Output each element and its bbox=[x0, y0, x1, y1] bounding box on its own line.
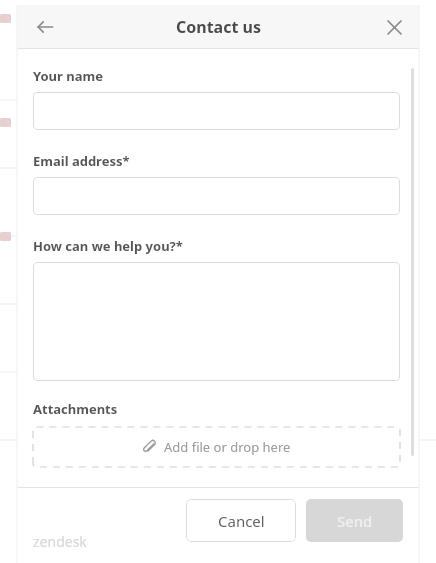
staticText: Add file or drop here bbox=[164, 438, 291, 456]
button[interactable]: Close bbox=[377, 10, 411, 44]
button[interactable]: Add file or drop here bbox=[33, 427, 400, 467]
button[interactable]: Send bbox=[306, 499, 403, 542]
staticText: Send bbox=[337, 511, 373, 531]
staticText: Contact us bbox=[176, 16, 261, 38]
button[interactable] bbox=[33, 92, 400, 130]
staticText: Attachments bbox=[33, 400, 118, 418]
staticText: zendesk bbox=[33, 532, 87, 551]
button[interactable] bbox=[33, 177, 400, 215]
staticText: Cancel bbox=[218, 511, 265, 531]
staticText: Your name bbox=[33, 67, 103, 85]
staticText: How can we help you?* bbox=[33, 237, 183, 255]
button[interactable]: Back bbox=[27, 9, 63, 45]
staticText: Email address* bbox=[33, 152, 130, 170]
button[interactable] bbox=[33, 262, 400, 381]
button[interactable]: Cancel bbox=[186, 499, 296, 542]
